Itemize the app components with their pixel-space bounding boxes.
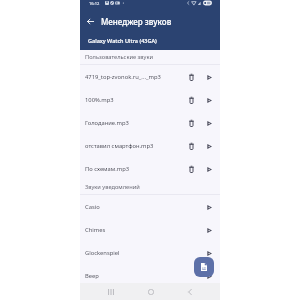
button[interactable]: Play xyxy=(202,200,216,214)
button[interactable]: Play xyxy=(202,246,216,260)
button[interactable]: Delete xyxy=(184,116,198,130)
button[interactable]: Beep xyxy=(80,264,220,287)
button[interactable]: 100%.mp3 xyxy=(80,88,220,111)
button[interactable]: Casio xyxy=(80,195,220,218)
button[interactable]: Play xyxy=(202,162,216,176)
button[interactable]: Delete xyxy=(184,139,198,153)
button[interactable]: Голодание.mp3 xyxy=(80,111,220,134)
button[interactable]: Add sound file xyxy=(194,257,214,277)
staticText: Beep xyxy=(85,272,184,280)
staticText: Glockenspiel xyxy=(85,249,184,257)
staticText: Galaxy Watch Ultra (43GA) xyxy=(88,37,157,44)
button[interactable]: отставил смартфон.mp3 xyxy=(80,134,220,157)
button[interactable]: Play xyxy=(202,116,216,130)
button[interactable]: Play xyxy=(202,139,216,153)
staticText: Пользовательские звуки xyxy=(85,53,153,61)
button[interactable]: Delete xyxy=(184,70,198,84)
staticText: Chimes xyxy=(85,226,184,234)
button[interactable]: Play xyxy=(202,223,216,237)
button[interactable]: Delete xyxy=(184,162,198,176)
button[interactable]: Chimes xyxy=(80,218,220,241)
button[interactable]: Play xyxy=(202,70,216,84)
staticText: Менеджер звуков xyxy=(101,16,172,27)
staticText: 4719_top-zvonok.ru_..._mp3 xyxy=(85,73,184,81)
staticText: отставил смартфон.mp3 xyxy=(85,142,184,150)
staticText: 16:12 xyxy=(89,1,100,6)
button[interactable]: Back xyxy=(84,15,97,28)
button[interactable]: Recent apps xyxy=(103,284,118,299)
button[interactable]: Home xyxy=(143,284,158,299)
button[interactable]: По схемам.mp3 xyxy=(80,157,220,180)
button[interactable]: 4719_top-zvonok.ru_..._mp3 xyxy=(80,65,220,88)
staticText: 100%.mp3 xyxy=(85,96,184,104)
staticText: По схемам.mp3 xyxy=(85,165,184,173)
staticText: Голодание.mp3 xyxy=(85,119,184,127)
button[interactable]: Back xyxy=(182,284,197,299)
button[interactable]: Glockenspiel xyxy=(80,241,220,264)
staticText: Casio xyxy=(85,203,184,211)
button[interactable]: Play xyxy=(202,269,216,283)
button[interactable]: Play xyxy=(202,93,216,107)
staticText: Звуки уведомлений xyxy=(85,183,140,191)
button[interactable]: Delete xyxy=(184,93,198,107)
